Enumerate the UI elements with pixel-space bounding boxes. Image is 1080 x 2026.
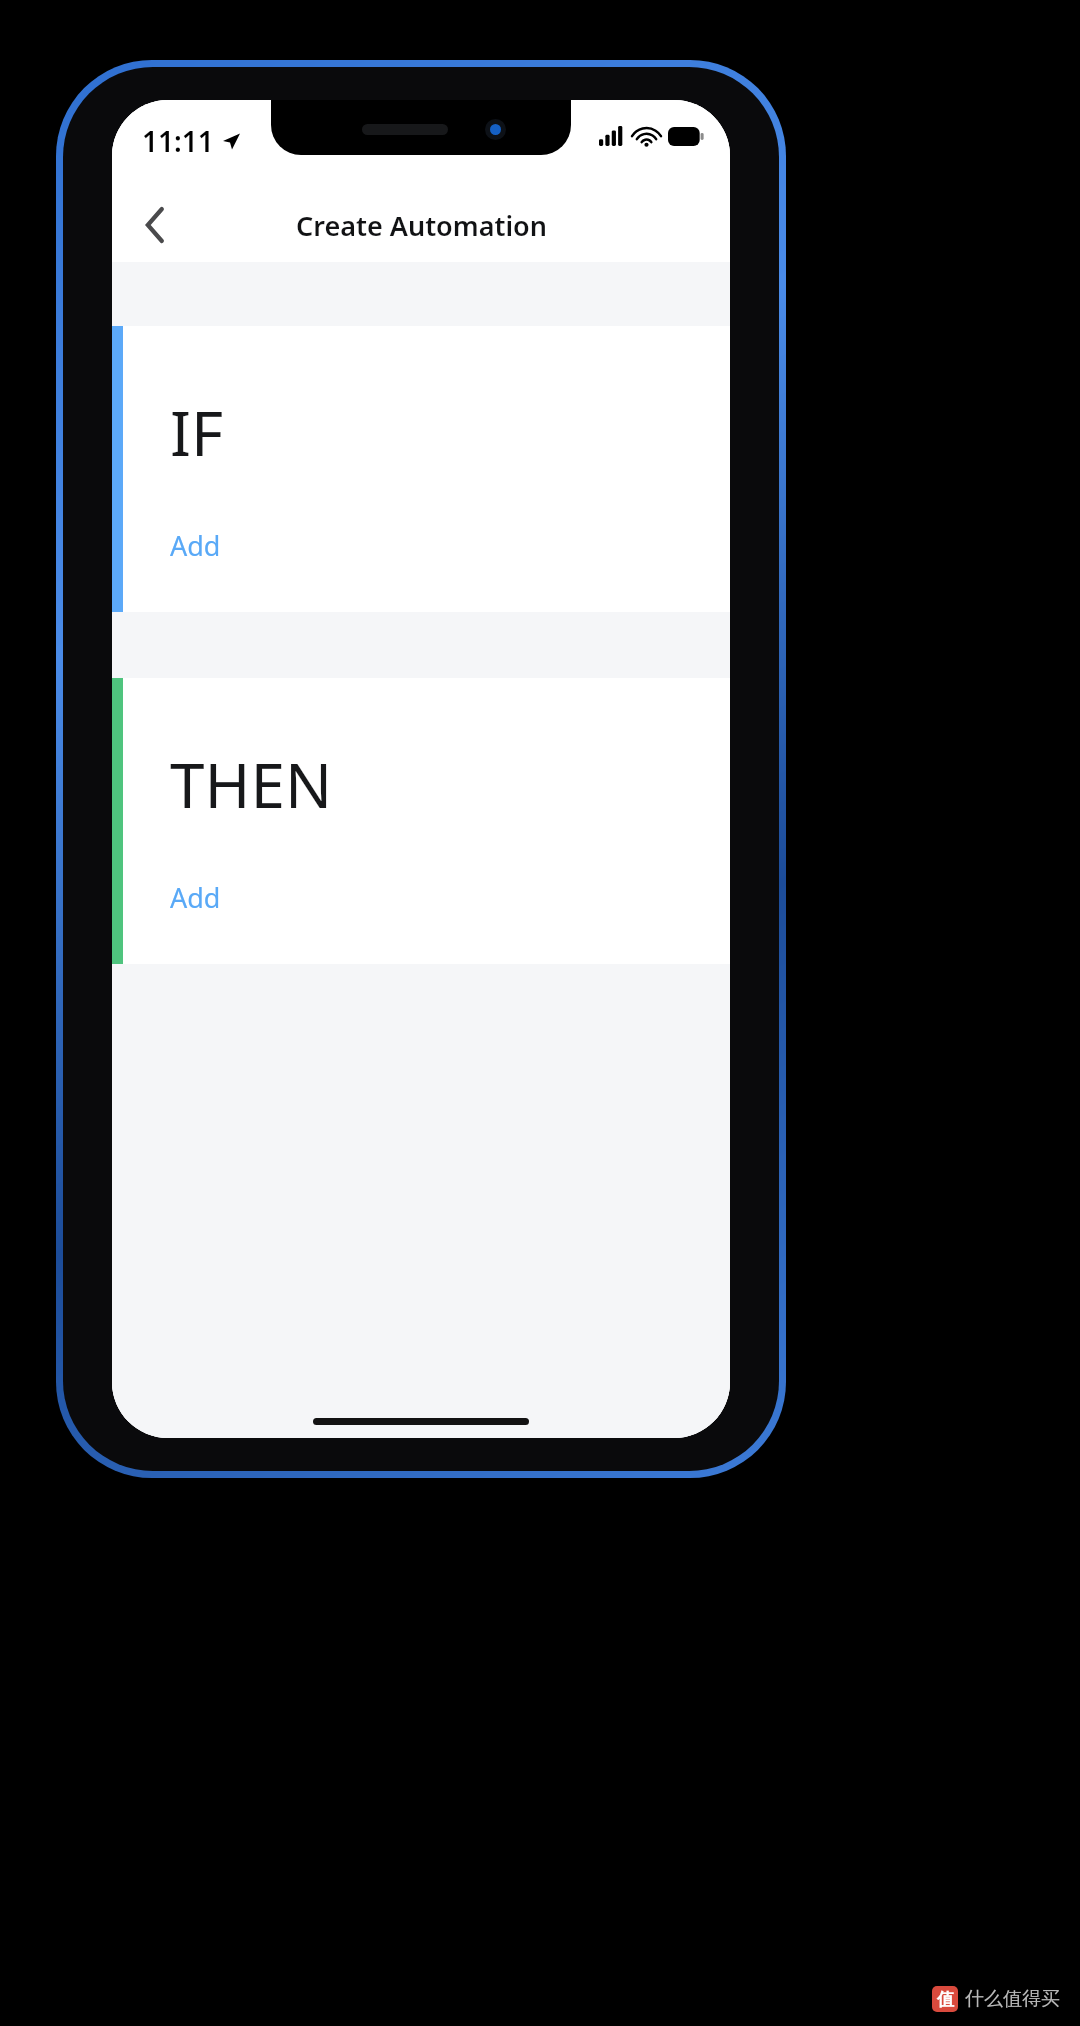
staticText: 值: [937, 1989, 954, 2010]
staticText: 11:11: [142, 122, 214, 160]
staticText: 什么值得买: [965, 1987, 1060, 2011]
staticText: Add: [170, 527, 221, 564]
staticText: Add: [170, 879, 221, 916]
button[interactable]: Add: [170, 879, 221, 916]
staticText: IF: [170, 390, 224, 474]
staticText: THEN: [170, 742, 333, 826]
button[interactable]: Back: [126, 196, 184, 254]
staticText: Create Automation: [296, 207, 547, 244]
button[interactable]: Add: [170, 527, 221, 564]
